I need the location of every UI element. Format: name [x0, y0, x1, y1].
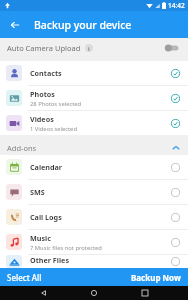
button[interactable]: Photos	[0, 86, 188, 110]
staticText: 7 Music files not protected	[30, 244, 102, 252]
button[interactable]: Photos selected	[168, 91, 182, 105]
other: Info	[85, 44, 93, 52]
button[interactable]: Music not selected	[168, 235, 182, 249]
staticText: 28 Photos selected	[30, 100, 82, 108]
button[interactable]: Call Logs	[0, 205, 188, 229]
staticText: 14:42	[168, 1, 185, 10]
button[interactable]: Other Files not selected	[168, 255, 182, 268]
button[interactable]: Add-ons	[0, 140, 188, 155]
staticText: SMS	[30, 187, 45, 197]
staticText: Backup your device	[34, 18, 132, 32]
staticText: Music	[30, 233, 51, 243]
staticText: 1 Videos selected	[30, 125, 77, 133]
button[interactable]: SMS not selected	[168, 185, 182, 199]
button[interactable]: Videos selected	[168, 116, 182, 130]
button[interactable]: Auto Camera Upload	[0, 38, 188, 57]
button[interactable]: Contacts selected	[168, 66, 182, 80]
other: Collapse Add-ons	[171, 143, 181, 153]
button[interactable]: Calendar	[0, 155, 188, 179]
staticText: i	[88, 45, 90, 52]
button[interactable]: Music	[0, 230, 188, 254]
staticText: Other Files	[30, 255, 69, 265]
button[interactable]: Select All	[0, 268, 94, 286]
staticText: Videos	[30, 114, 54, 124]
button[interactable]: Backup Now	[94, 268, 188, 286]
staticText: Add-ons	[7, 143, 37, 153]
button[interactable]: Calendar not selected	[168, 160, 182, 174]
button[interactable]: Back	[37, 286, 51, 300]
button[interactable]: SMS	[0, 180, 188, 204]
staticText: Backup Now	[131, 272, 181, 283]
staticText: Photos	[30, 89, 55, 99]
button[interactable]: Auto Camera Upload toggle	[163, 42, 181, 54]
button[interactable]: Recents	[138, 286, 152, 300]
staticText: Calendar	[30, 162, 63, 172]
button[interactable]: Back	[6, 16, 24, 34]
staticText: Contacts	[30, 68, 62, 78]
button[interactable]: Other Files	[0, 255, 188, 268]
button[interactable]: Contacts	[0, 61, 188, 85]
staticText: Auto Camera Upload	[7, 43, 81, 53]
staticText: Select All	[7, 272, 42, 283]
button[interactable]: Call Logs not selected	[168, 210, 182, 224]
staticText: Call Logs	[30, 212, 62, 222]
button[interactable]: Videos	[0, 111, 188, 135]
button[interactable]: Home	[87, 286, 101, 300]
